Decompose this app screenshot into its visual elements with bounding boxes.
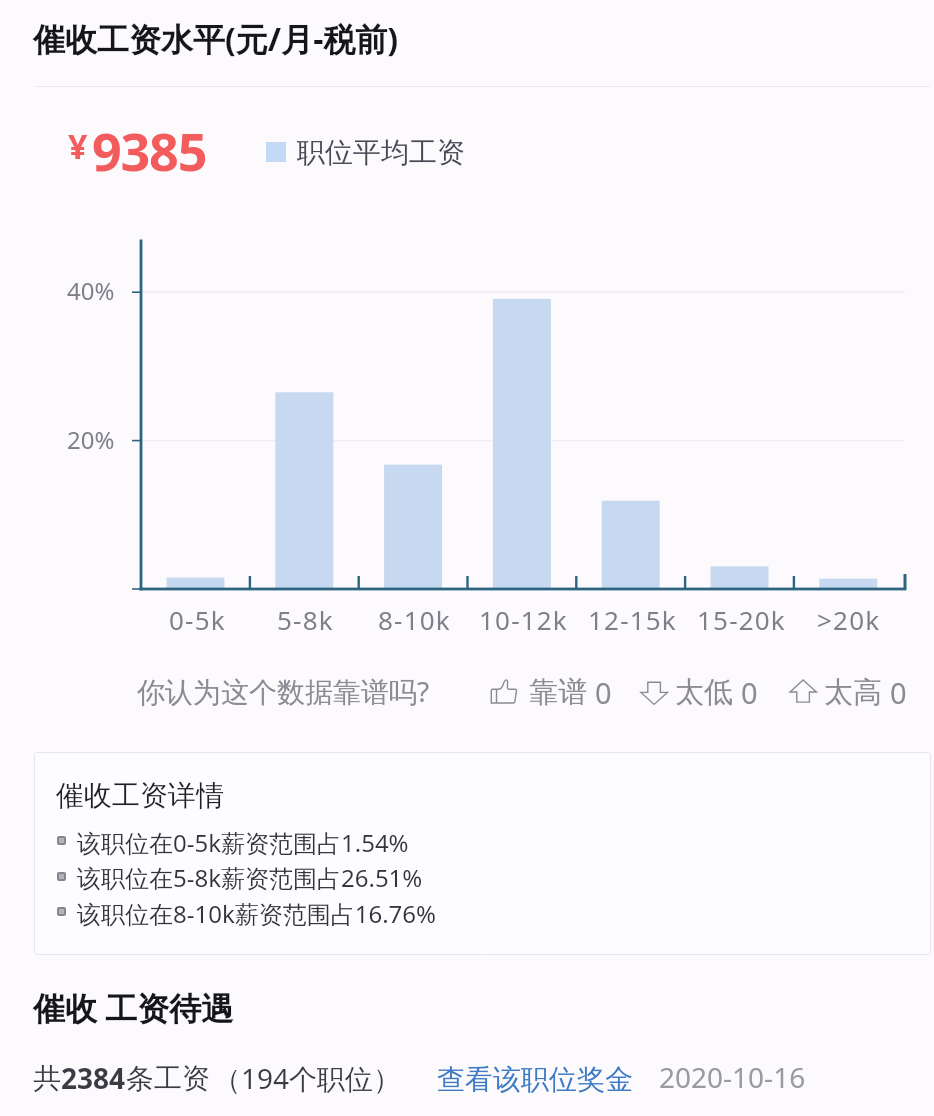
staticText: （194个职位） <box>213 1059 402 1097</box>
staticText: 2384 <box>61 1059 126 1097</box>
staticText: 你认为这个数据靠谱吗? <box>137 672 430 710</box>
button[interactable]: 查看该职位奖金 <box>437 1056 633 1103</box>
staticText: 条工资 <box>126 1061 210 1096</box>
staticText: 催收工资水平(元/月-税前) <box>33 17 399 61</box>
staticText: 20% <box>67 423 115 456</box>
staticText: 9385 <box>92 115 207 186</box>
button[interactable]: 太高 0 <box>790 671 907 714</box>
staticText: 40% <box>67 274 115 307</box>
staticText: 该职位在0-5k薪资范围占1.54% <box>77 826 409 859</box>
staticText: 15-20k <box>697 602 786 637</box>
staticText: 12-15k <box>588 602 677 637</box>
staticText: 0 <box>890 673 907 712</box>
staticText: 5-8k <box>277 602 334 637</box>
staticText: 共 <box>33 1061 61 1096</box>
staticText: 太高 <box>824 674 882 711</box>
staticText: 10-12k <box>479 602 568 637</box>
button[interactable]: 太低 0 <box>641 671 758 714</box>
staticText: 0 <box>741 673 758 712</box>
staticText: >20k <box>817 602 881 637</box>
staticText: 0-5k <box>169 602 226 637</box>
staticText: 太低 <box>675 674 733 711</box>
staticText: 职位平均工资 <box>297 135 465 170</box>
staticText: ¥ <box>68 123 88 169</box>
staticText: 该职位在8-10k薪资范围占16.76% <box>77 897 437 930</box>
staticText: 该职位在5-8k薪资范围占26.51% <box>77 861 423 894</box>
staticText: 靠谱 <box>529 674 587 711</box>
staticText: 催收工资详情 <box>56 778 224 813</box>
staticText: 查看该职位奖金 <box>437 1062 633 1097</box>
button[interactable]: 靠谱 0 <box>487 671 612 714</box>
staticText: 8-10k <box>378 602 451 637</box>
staticText: 催收 工资待遇 <box>33 986 234 1030</box>
staticText: 2020-10-16 <box>659 1058 806 1096</box>
staticText: 0 <box>595 673 612 712</box>
